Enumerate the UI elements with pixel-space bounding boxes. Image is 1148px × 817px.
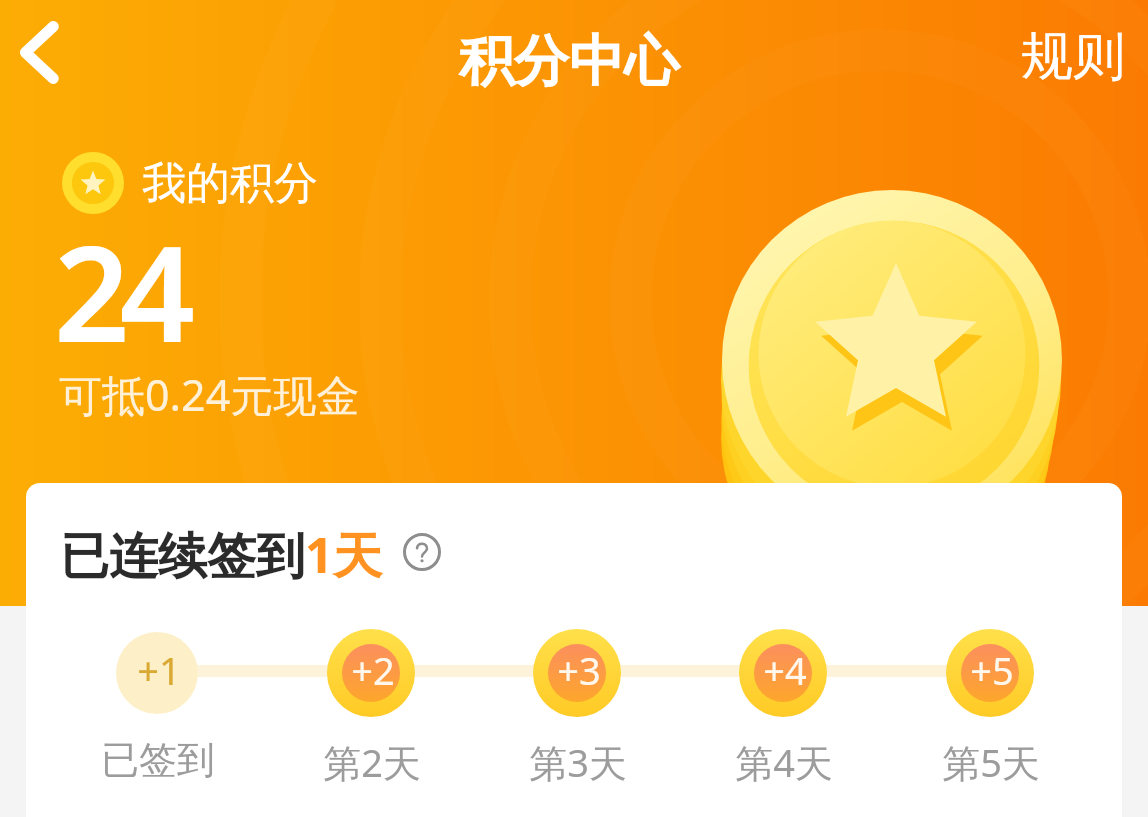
staticText: +4 — [725, 644, 845, 696]
staticText: 已签到 — [58, 736, 258, 784]
staticText: 可抵0.24元现金 — [59, 365, 360, 424]
staticText: 第4天 — [684, 736, 884, 788]
staticText: +2 — [313, 644, 433, 696]
staticText: 第3天 — [478, 736, 678, 788]
button[interactable]: 规则 — [993, 2, 1148, 106]
staticText: 第2天 — [272, 736, 472, 788]
staticText: +1 — [99, 644, 219, 696]
staticText: 第5天 — [891, 736, 1091, 788]
button[interactable]: Back — [0, 0, 78, 104]
staticText: +3 — [519, 644, 639, 696]
staticText: +5 — [932, 644, 1052, 696]
staticText: 规则 — [1021, 24, 1125, 84]
button[interactable]: Help — [397, 533, 441, 577]
staticText: 已连续签到1天 — [60, 521, 383, 588]
staticText: 24 — [54, 201, 186, 381]
staticText: 我的积分 — [142, 156, 318, 211]
staticText: 积分中心 — [459, 27, 679, 96]
